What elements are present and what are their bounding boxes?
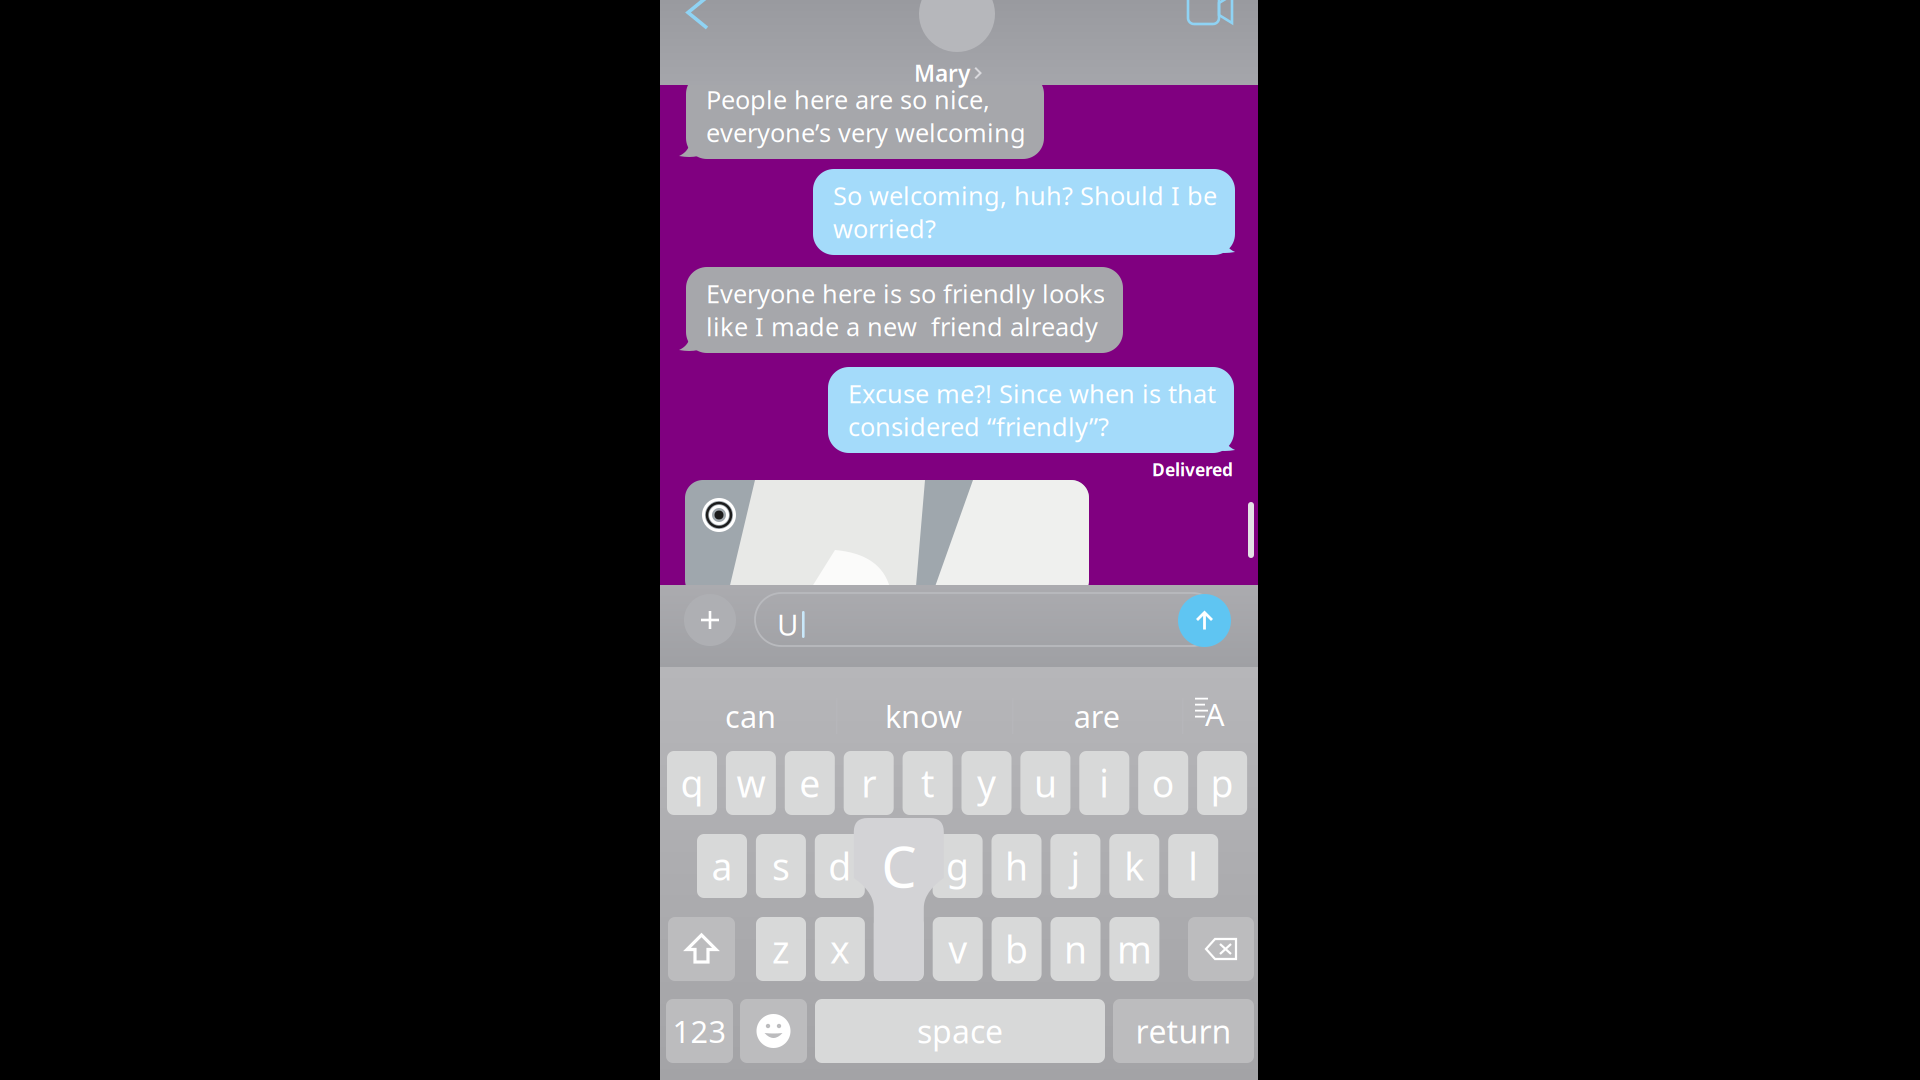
button[interactable]: Everyone here is so friendly looks <box>686 267 1123 353</box>
staticText: t <box>921 758 934 808</box>
staticText: m <box>1117 924 1152 974</box>
button[interactable]: a <box>697 834 747 898</box>
staticText: Mary <box>914 58 970 88</box>
button[interactable]: s <box>756 834 806 898</box>
staticText: return <box>1135 1010 1231 1052</box>
button[interactable]: 123 <box>666 999 733 1063</box>
staticText: can <box>725 696 776 736</box>
staticText: C <box>881 829 916 903</box>
staticText: everyone’s very welcoming <box>706 116 1026 149</box>
staticText: d <box>828 841 851 891</box>
button[interactable]: return <box>1113 999 1254 1063</box>
button[interactable]: d <box>815 834 865 898</box>
button[interactable]: Shift <box>668 917 735 981</box>
button[interactable]: Add attachment <box>684 594 736 646</box>
staticText: know <box>885 696 962 736</box>
button[interactable]: Photo attachment <box>685 480 1089 598</box>
staticText: y <box>977 758 996 808</box>
button[interactable]: Back <box>676 0 720 36</box>
staticText: r <box>861 758 876 808</box>
staticText: i <box>1099 758 1109 808</box>
staticText: U <box>777 605 798 644</box>
button[interactable]: v <box>933 917 983 981</box>
button[interactable]: e <box>785 751 835 815</box>
staticText: z <box>772 924 790 974</box>
staticText: w <box>736 758 765 808</box>
staticText: So welcoming, huh? Should I be <box>833 179 1217 212</box>
staticText: space <box>917 1010 1003 1052</box>
staticText: worried? <box>833 212 936 245</box>
staticText: e <box>799 758 820 808</box>
staticText: p <box>1211 758 1234 808</box>
staticText: b <box>1005 924 1028 974</box>
button[interactable]: g <box>933 834 983 898</box>
button[interactable]: f <box>874 834 924 898</box>
staticText: s <box>772 841 790 891</box>
staticText: v <box>948 924 967 974</box>
button[interactable]: u <box>1020 751 1070 815</box>
button[interactable]: x <box>815 917 865 981</box>
staticText: Delivered <box>1152 458 1233 481</box>
button[interactable]: p <box>1197 751 1247 815</box>
staticText: q <box>680 758 703 808</box>
button[interactable]: Delete <box>1188 917 1254 981</box>
staticText: A <box>1205 694 1225 734</box>
staticText: like I made a new friend already <box>706 310 1098 343</box>
staticText: Excuse me?! Since when is that <box>848 377 1216 410</box>
staticText: Everyone here is so friendly looks <box>706 277 1105 310</box>
button[interactable]: h <box>991 834 1041 898</box>
button[interactable]: w <box>726 751 776 815</box>
staticText: u <box>1034 758 1057 808</box>
button[interactable]: People here are so nice, <box>686 73 1044 159</box>
button[interactable]: z <box>756 917 806 981</box>
button[interactable]: i <box>1079 751 1129 815</box>
button[interactable]: can <box>665 690 835 742</box>
button[interactable]: Formatting options <box>1177 690 1233 742</box>
staticText: l <box>1188 841 1198 891</box>
button[interactable]: are <box>1012 690 1182 742</box>
staticText: g <box>946 841 969 891</box>
staticText: n <box>1064 924 1087 974</box>
button[interactable]: c <box>874 917 924 981</box>
button[interactable]: t <box>903 751 953 815</box>
staticText: j <box>1070 841 1080 891</box>
button[interactable]: FaceTime <box>1188 0 1236 36</box>
button[interactable]: l <box>1168 834 1218 898</box>
button[interactable]: space <box>815 999 1105 1063</box>
staticText: are <box>1074 696 1120 736</box>
staticText: x <box>830 924 850 974</box>
button[interactable]: j <box>1050 834 1100 898</box>
staticText: considered “friendly”? <box>848 410 1109 443</box>
button[interactable]: Emoji <box>740 999 807 1063</box>
staticText: a <box>711 841 732 891</box>
button[interactable]: Mary <box>876 0 1036 85</box>
button[interactable]: n <box>1050 917 1100 981</box>
button[interactable]: q <box>667 751 717 815</box>
staticText: h <box>1005 841 1028 891</box>
button[interactable]: m <box>1109 917 1159 981</box>
button[interactable]: y <box>961 751 1011 815</box>
button[interactable]: r <box>844 751 894 815</box>
button[interactable]: So welcoming, huh? Should I be <box>813 169 1235 255</box>
button[interactable]: know <box>838 690 1008 742</box>
button[interactable]: Excuse me?! Since when is that <box>828 367 1234 453</box>
button[interactable]: k <box>1109 834 1159 898</box>
staticText: People here are so nice, <box>706 83 990 116</box>
button[interactable]: Send <box>1178 594 1231 647</box>
staticText: k <box>1124 841 1144 891</box>
staticText: 123 <box>672 1011 726 1051</box>
staticText: o <box>1152 758 1175 808</box>
button[interactable]: b <box>992 917 1042 981</box>
button[interactable]: o <box>1138 751 1188 815</box>
staticText: f <box>892 841 905 891</box>
